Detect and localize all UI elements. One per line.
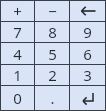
button[interactable]: .	[35, 86, 69, 110]
staticText: +	[13, 1, 22, 21]
button[interactable]: 8	[35, 22, 69, 42]
button[interactable]: 4	[1, 43, 34, 64]
button[interactable]: 1	[1, 65, 34, 85]
staticText: 6	[83, 44, 92, 64]
button[interactable]: Backspace	[70, 1, 105, 21]
button[interactable]: 6	[70, 43, 105, 64]
staticText: 5	[48, 44, 57, 64]
staticText: −	[48, 1, 57, 21]
staticText: 8	[48, 22, 57, 42]
button[interactable]: +	[1, 1, 34, 21]
button[interactable]: 0	[1, 86, 34, 110]
staticText: 1	[13, 65, 22, 85]
staticText: 2	[48, 65, 57, 85]
button[interactable]: 5	[35, 43, 69, 64]
staticText: .	[50, 88, 55, 108]
staticText: 7	[13, 22, 22, 42]
button[interactable]: 3	[70, 65, 105, 85]
staticText: 4	[13, 44, 22, 64]
staticText: 3	[83, 65, 92, 85]
button[interactable]: 9	[70, 22, 105, 42]
staticText: 9	[83, 22, 92, 42]
button[interactable]: Enter	[70, 86, 105, 110]
button[interactable]: 2	[35, 65, 69, 85]
button[interactable]: 7	[1, 22, 34, 42]
button[interactable]: −	[35, 1, 69, 21]
staticText: 0	[13, 88, 22, 108]
